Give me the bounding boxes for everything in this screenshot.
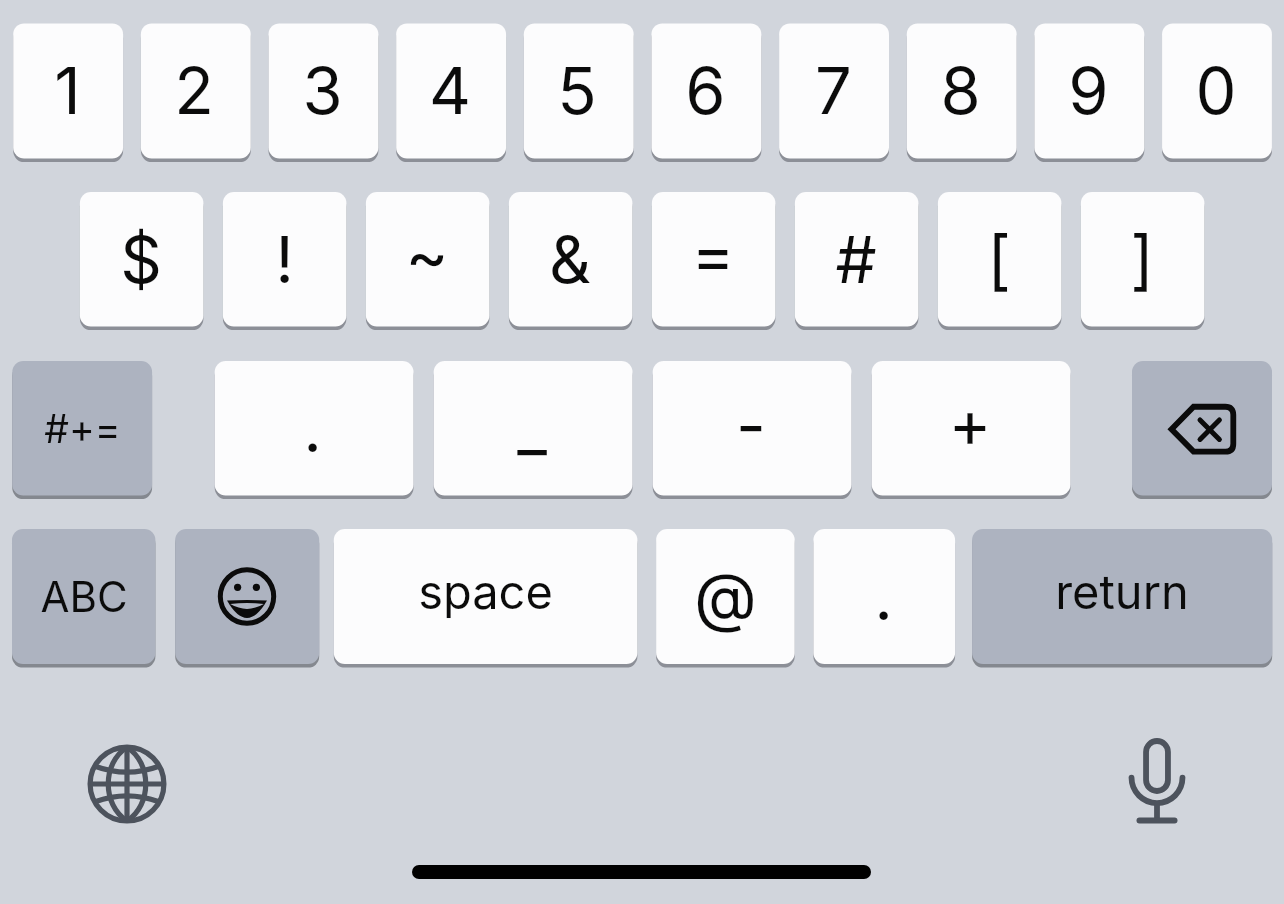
button[interactable]: ABC bbox=[12, 529, 155, 664]
button[interactable]: 7 bbox=[779, 23, 889, 158]
staticText: + bbox=[948, 384, 992, 463]
staticText: _ bbox=[517, 387, 547, 466]
button[interactable]: + bbox=[871, 361, 1070, 496]
button[interactable]: 6 bbox=[651, 23, 761, 158]
button[interactable]: # bbox=[794, 192, 918, 327]
button[interactable]: $ bbox=[79, 192, 203, 327]
staticText: 0 bbox=[1195, 51, 1237, 130]
button[interactable]: space bbox=[333, 529, 637, 664]
button[interactable]: Next keyboard bbox=[83, 740, 171, 828]
button[interactable]: #+= bbox=[12, 361, 152, 496]
staticText: = bbox=[691, 215, 735, 294]
staticText: 5 bbox=[557, 51, 597, 130]
button[interactable]: . bbox=[813, 529, 955, 664]
button[interactable]: & bbox=[508, 192, 632, 327]
staticText: 4 bbox=[429, 51, 471, 130]
staticText: 8 bbox=[940, 51, 981, 130]
staticText: ABC bbox=[40, 571, 128, 622]
staticText: return bbox=[1055, 563, 1189, 620]
button[interactable]: ! bbox=[222, 192, 346, 327]
staticText: @ bbox=[694, 557, 757, 636]
staticText: 3 bbox=[302, 51, 343, 130]
staticText: 9 bbox=[1068, 51, 1109, 130]
staticText: space bbox=[418, 563, 553, 620]
staticText: . bbox=[874, 557, 893, 636]
button[interactable]: 0 bbox=[1162, 23, 1272, 158]
button[interactable]: 4 bbox=[396, 23, 506, 158]
staticText: & bbox=[549, 220, 591, 299]
button[interactable]: = bbox=[651, 192, 775, 327]
staticText: 6 bbox=[685, 51, 726, 130]
staticText: 2 bbox=[174, 51, 214, 130]
button[interactable]: . bbox=[214, 361, 413, 496]
staticText: . bbox=[303, 389, 322, 468]
staticText: ] bbox=[1130, 220, 1154, 299]
button[interactable]: _ bbox=[433, 361, 632, 496]
staticText: $ bbox=[120, 220, 162, 299]
button[interactable]: ] bbox=[1080, 192, 1204, 327]
staticText: 7 bbox=[815, 51, 852, 130]
button[interactable]: return bbox=[972, 529, 1272, 664]
button[interactable]: ~ bbox=[365, 192, 489, 327]
button[interactable]: 2 bbox=[140, 23, 250, 158]
button[interactable]: 8 bbox=[906, 23, 1016, 158]
button[interactable]: 3 bbox=[268, 23, 378, 158]
button[interactable]: @ bbox=[656, 529, 795, 664]
staticText: ~ bbox=[405, 216, 449, 295]
button[interactable]: Emoji bbox=[175, 529, 319, 664]
button[interactable]: 9 bbox=[1034, 23, 1144, 158]
staticText: # bbox=[835, 220, 877, 299]
staticText: [ bbox=[987, 220, 1011, 299]
staticText: ! bbox=[275, 220, 294, 299]
button[interactable]: 5 bbox=[523, 23, 633, 158]
button[interactable]: Delete bbox=[1132, 361, 1272, 496]
button[interactable]: Dictation bbox=[1117, 730, 1197, 830]
staticText: - bbox=[736, 386, 766, 465]
button[interactable]: - bbox=[652, 361, 851, 496]
button[interactable]: [ bbox=[937, 192, 1061, 327]
staticText: #+= bbox=[44, 405, 121, 452]
staticText: 1 bbox=[54, 51, 81, 130]
button[interactable]: 1 bbox=[13, 23, 123, 158]
